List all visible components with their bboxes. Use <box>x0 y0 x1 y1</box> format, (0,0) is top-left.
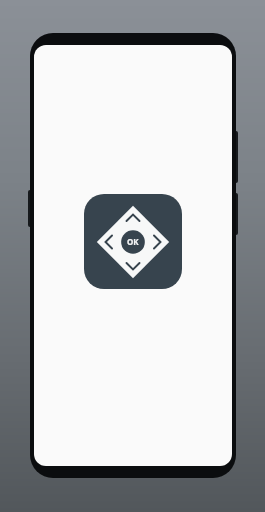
button[interactable]: Remote control app <box>84 194 182 289</box>
staticText: OK <box>127 236 139 247</box>
